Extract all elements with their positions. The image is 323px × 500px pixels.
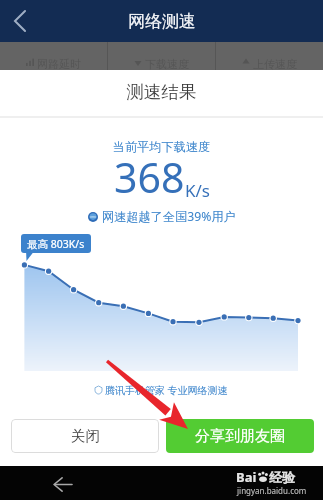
button[interactable]: 分享到朋友圈 [166, 419, 314, 453]
staticText: 网速超越了全国39%用户 [102, 208, 236, 225]
staticText: 下载速度 [145, 57, 189, 71]
staticText: jingyan.baidu.com [237, 485, 307, 496]
staticText: 关闭 [71, 427, 100, 445]
staticText: 最高 803K/s [27, 237, 85, 251]
staticText: 368 [114, 149, 185, 205]
staticText: 测速结果 [0, 81, 323, 103]
staticText: 网路延时 [37, 57, 81, 71]
staticText: Bai [236, 468, 257, 486]
button[interactable]: Back [0, 0, 40, 42]
staticText: 当前平均下载速度 [0, 139, 323, 154]
staticText: 经验 [269, 469, 295, 485]
staticText: 上传速度 [253, 57, 297, 71]
staticText: K/s [185, 179, 210, 202]
button[interactable]: 关闭 [11, 419, 159, 453]
staticText: 腾讯手机管家 专业网络测速 [105, 383, 228, 397]
button[interactable]: Back [50, 471, 76, 497]
staticText: 网络测速 [128, 11, 196, 32]
staticText: 分享到朋友圈 [195, 427, 285, 446]
